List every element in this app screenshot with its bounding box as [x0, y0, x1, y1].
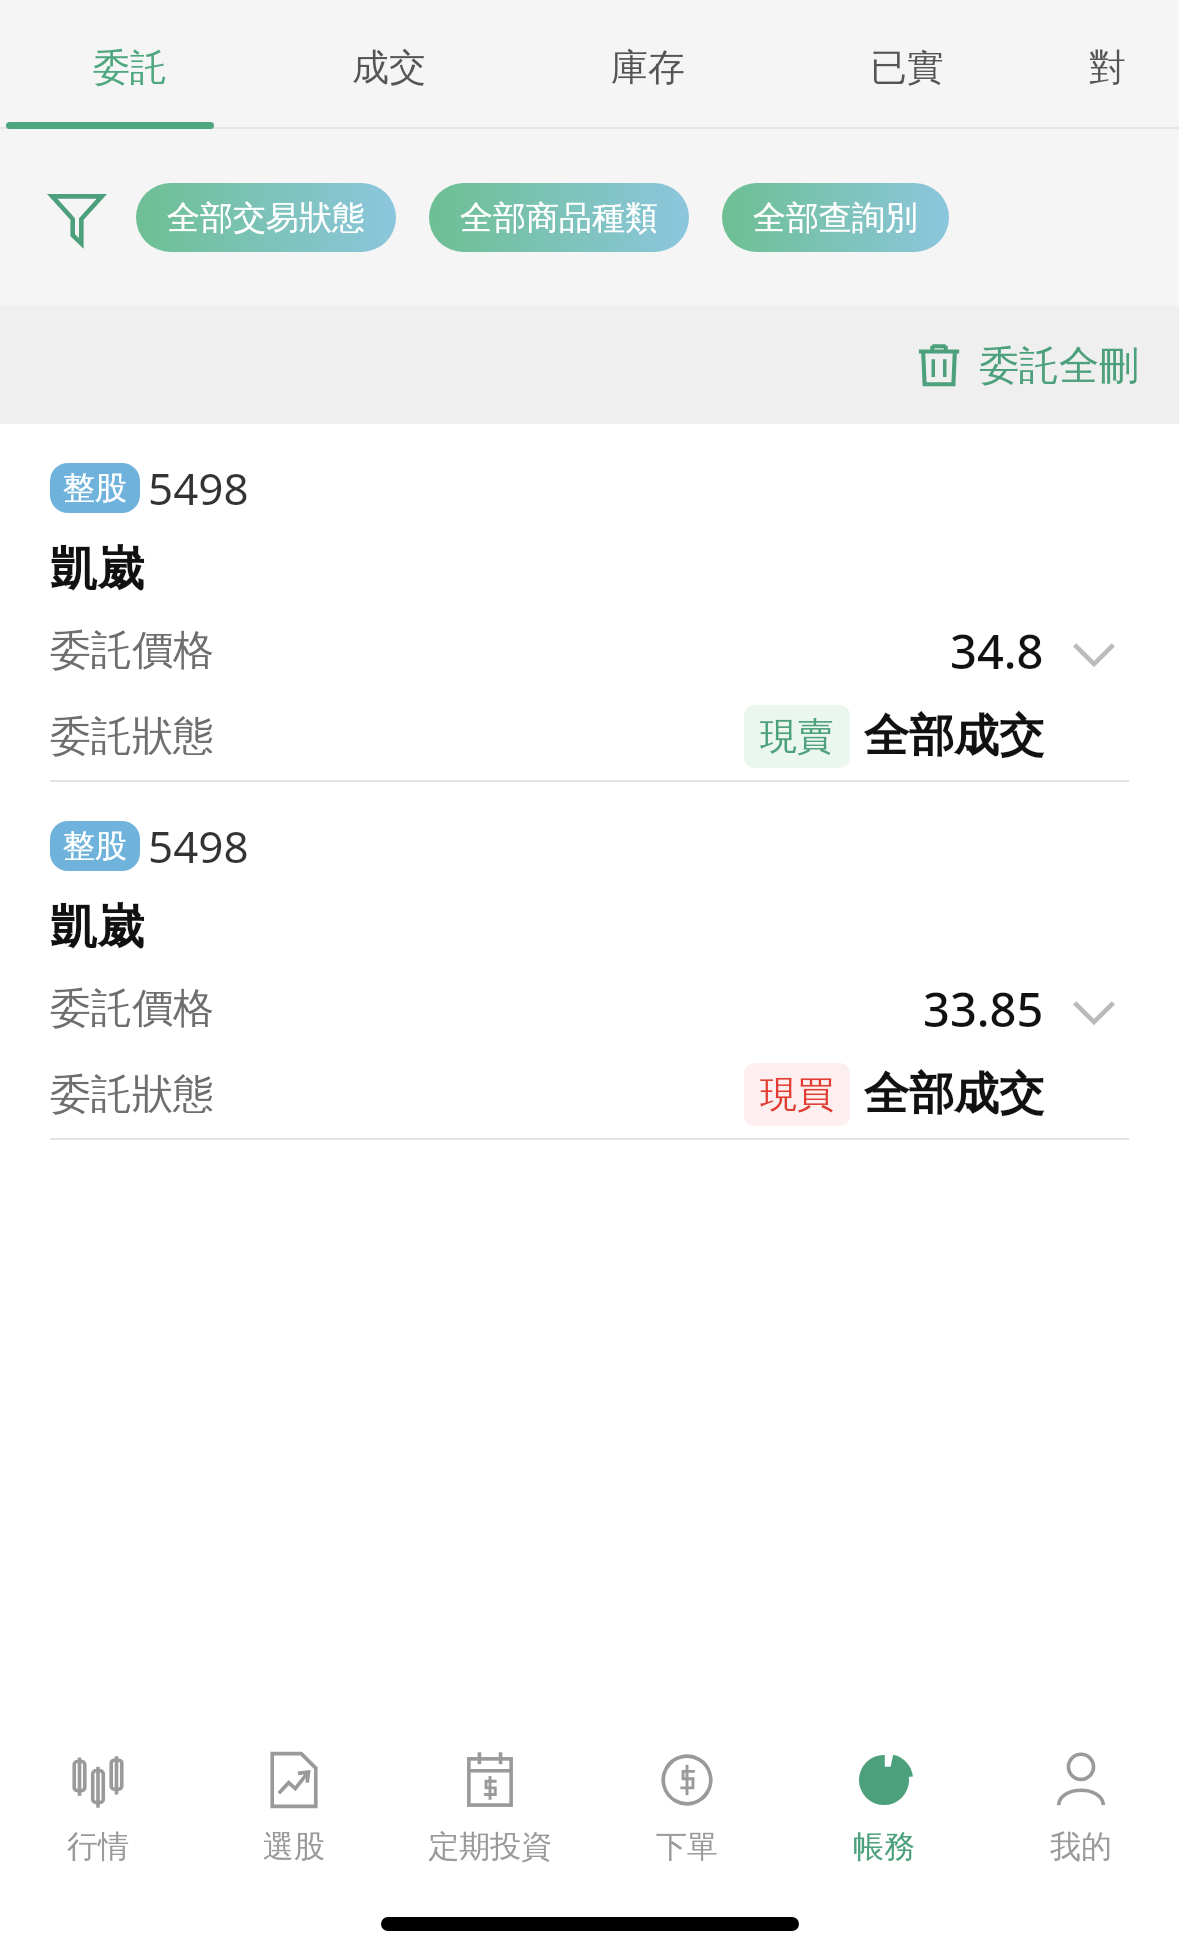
staticText: 凱崴 — [50, 540, 144, 599]
staticText: 全部成交 — [864, 708, 1044, 765]
staticText: 整股 — [63, 826, 127, 866]
button[interactable]: 委託全刪 — [915, 340, 1139, 390]
staticText: 5498 — [148, 458, 249, 518]
staticText: 選股 — [263, 1827, 325, 1866]
staticText: 委託全刪 — [979, 340, 1139, 390]
staticText: 全部查詢別 — [753, 197, 918, 239]
button[interactable]: 全部商品種類 — [429, 183, 689, 252]
staticText: 行情 — [67, 1827, 129, 1866]
staticText: 33.85 — [923, 977, 1044, 1041]
button[interactable]: 對 — [1036, 0, 1179, 129]
button[interactable]: 行情 — [0, 1722, 196, 1890]
button[interactable]: Expand — [1059, 977, 1129, 1047]
button[interactable]: Filter — [46, 187, 108, 249]
button[interactable]: 已實 — [777, 0, 1036, 129]
staticText: 委託狀態 — [50, 1069, 214, 1121]
button[interactable]: 選股 — [196, 1722, 392, 1890]
staticText: 全部商品種類 — [460, 197, 658, 239]
button[interactable]: 成交 — [259, 0, 518, 129]
button[interactable]: 帳務 — [785, 1722, 982, 1890]
staticText: 凱崴 — [50, 898, 144, 957]
button[interactable]: 整股 — [0, 782, 1179, 1140]
button[interactable]: Expand — [1059, 619, 1129, 689]
staticText: 委託狀態 — [50, 711, 214, 763]
staticText: 現賣 — [760, 713, 834, 760]
staticText: 34.8 — [950, 619, 1044, 683]
staticText: 定期投資 — [428, 1827, 552, 1866]
staticText: 委託價格 — [50, 625, 214, 677]
staticText: 5498 — [148, 816, 249, 876]
staticText: 已實 — [870, 44, 944, 91]
staticText: 委託 — [93, 44, 167, 91]
staticText: 全部交易狀態 — [167, 197, 365, 239]
staticText: 現買 — [760, 1071, 834, 1118]
button[interactable]: 整股 — [0, 424, 1179, 782]
staticText: 帳務 — [853, 1827, 915, 1866]
staticText: 全部成交 — [864, 1066, 1044, 1123]
button[interactable]: 定期投資 — [392, 1722, 588, 1890]
staticText: 對 — [1089, 44, 1126, 91]
button[interactable]: 委託 — [0, 0, 259, 129]
button[interactable]: 我的 — [982, 1722, 1179, 1890]
button[interactable]: 全部交易狀態 — [136, 183, 396, 252]
staticText: 整股 — [63, 468, 127, 508]
staticText: 我的 — [1050, 1827, 1112, 1866]
staticText: 委託價格 — [50, 983, 214, 1035]
button[interactable]: 全部查詢別 — [722, 183, 949, 252]
button[interactable]: 下單 — [588, 1722, 785, 1890]
button[interactable]: 庫存 — [518, 0, 777, 129]
staticText: 下單 — [656, 1827, 718, 1866]
staticText: 成交 — [352, 44, 426, 91]
staticText: 庫存 — [611, 44, 685, 91]
